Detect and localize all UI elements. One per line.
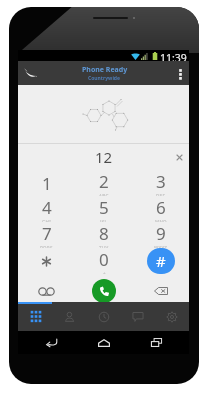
staticText: Phone Ready — [82, 65, 128, 75]
button[interactable]: 6 — [132, 196, 189, 222]
staticText: 9 — [156, 222, 166, 245]
button[interactable]: Backspace — [132, 277, 189, 305]
button[interactable]: 8 — [75, 222, 132, 248]
button[interactable]: 3 — [132, 170, 189, 196]
staticText: JKL — [100, 219, 108, 222]
staticText: 8 — [99, 222, 109, 245]
staticText: 12 — [95, 147, 113, 167]
button[interactable]: Navigate up — [18, 61, 42, 85]
button[interactable]: Recent apps — [136, 331, 176, 354]
staticText: ABC — [99, 193, 109, 196]
button[interactable]: Call — [75, 277, 132, 305]
button[interactable]: 1 — [18, 170, 75, 196]
staticText: PQRS — [40, 245, 53, 248]
staticText: TUV — [99, 245, 109, 248]
staticText: WXYZ — [154, 245, 168, 248]
button[interactable]: Home — [84, 331, 124, 354]
staticText: 11:39 — [160, 51, 187, 62]
staticText: 0 — [99, 248, 109, 271]
staticText: + — [103, 271, 106, 274]
button[interactable]: Back — [31, 331, 71, 354]
button[interactable]: 4 — [18, 196, 75, 222]
staticText: Countrywide — [88, 75, 121, 82]
button[interactable]: More options — [171, 61, 189, 85]
button[interactable]: 7 — [18, 222, 75, 248]
staticText: GHI — [42, 219, 52, 222]
staticText: 7 — [42, 222, 52, 245]
staticText: 3 — [156, 170, 166, 193]
button[interactable]: # — [132, 248, 189, 274]
button[interactable]: Settings — [155, 302, 189, 331]
staticText: 1 — [42, 172, 52, 195]
staticText: # — [156, 251, 166, 271]
staticText: 5 — [99, 196, 109, 219]
button[interactable]: 9 — [132, 222, 189, 248]
staticText: MNO — [155, 219, 167, 222]
button[interactable]: Voicemail — [18, 277, 75, 305]
button[interactable]: Contacts — [53, 302, 87, 331]
staticText: DEF — [156, 193, 166, 196]
staticText: 2 — [99, 170, 109, 193]
button[interactable]: 5 — [75, 196, 132, 222]
staticText: 4 — [42, 196, 52, 219]
button[interactable]: Messages — [121, 302, 155, 331]
button[interactable]: Dialpad — [18, 302, 53, 331]
button[interactable]: 2 — [75, 170, 132, 196]
button[interactable]: 0 — [75, 248, 132, 274]
button[interactable]: Star — [18, 248, 75, 274]
button[interactable]: Recents — [87, 302, 121, 331]
button[interactable]: Clear — [169, 144, 189, 170]
staticText: 6 — [156, 196, 166, 219]
